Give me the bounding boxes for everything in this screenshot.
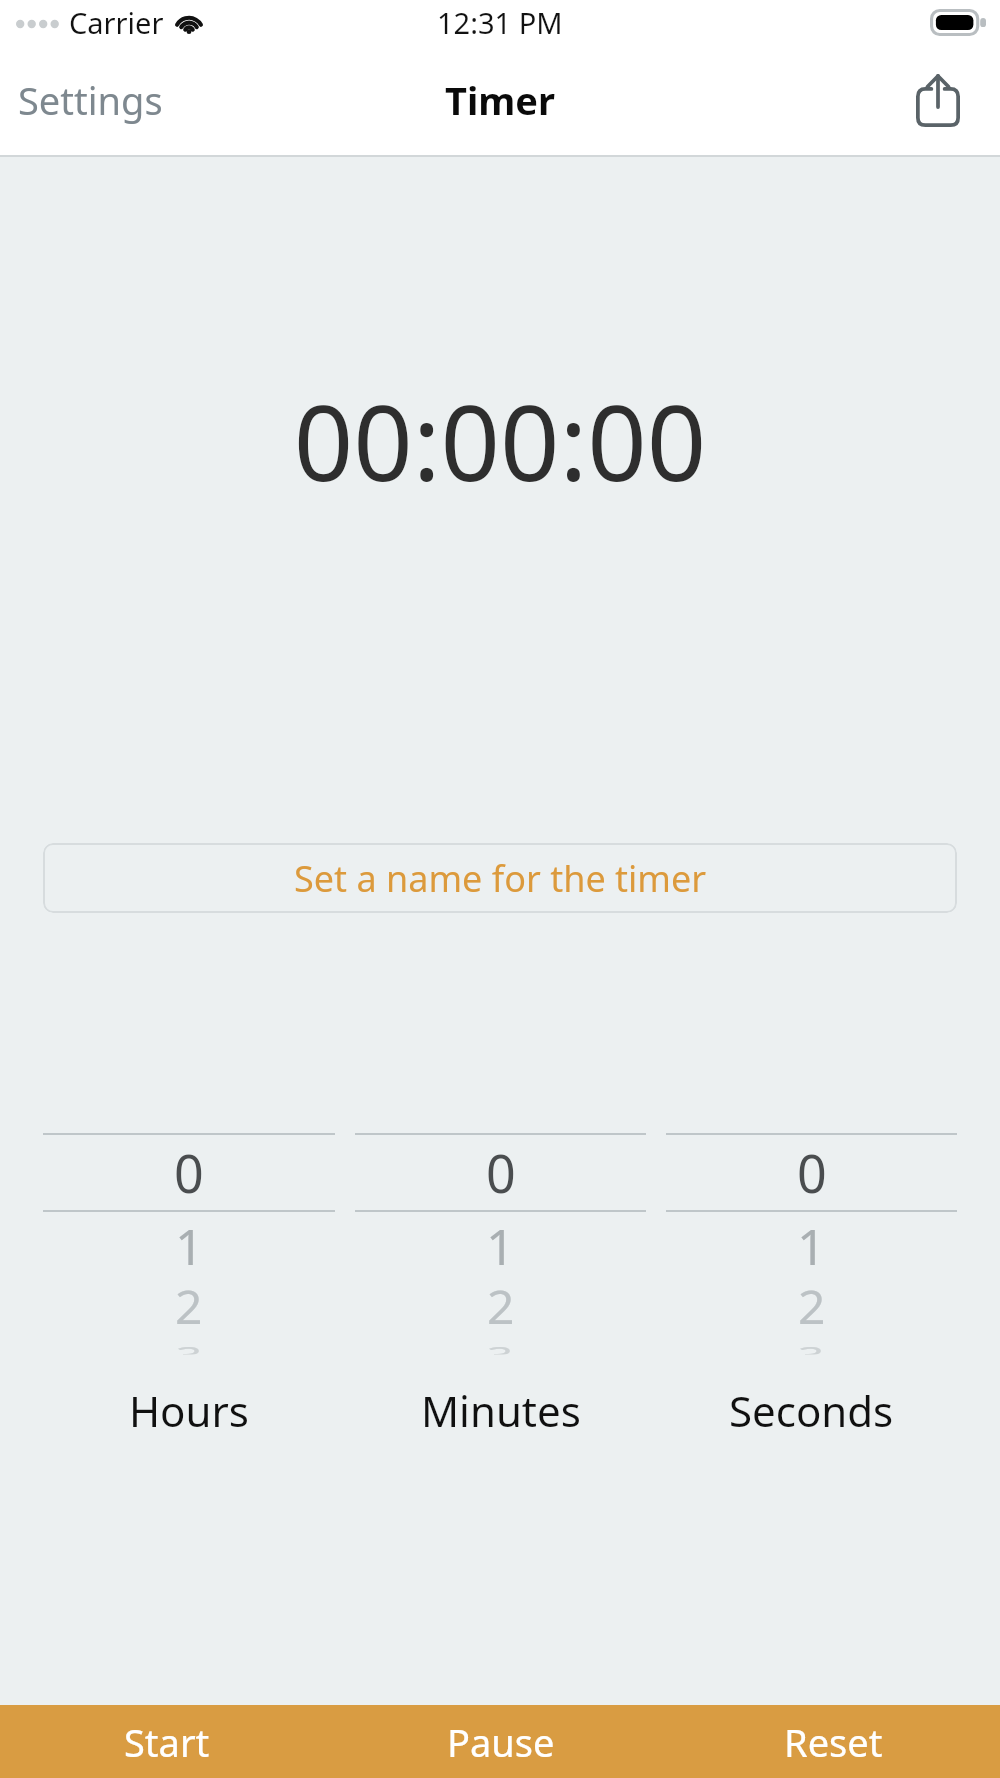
staticText: 3 (176, 1339, 203, 1354)
button[interactable]: 0 (666, 1133, 957, 1439)
staticText: 1 (486, 1212, 515, 1274)
staticText: Start (124, 1716, 210, 1768)
staticText: Carrier (69, 3, 164, 42)
staticText: 0 (486, 1137, 516, 1208)
staticText: Reset (784, 1716, 883, 1768)
button[interactable]: Reset (667, 1705, 1000, 1778)
button[interactable]: Settings (0, 60, 181, 140)
staticText: 00:00:00 (0, 370, 1000, 512)
staticText: 3 (487, 1339, 514, 1354)
staticText: Seconds (729, 1382, 894, 1439)
staticText: 1 (175, 1212, 204, 1274)
staticText: 2 (798, 1276, 826, 1330)
staticText: Timer (445, 74, 556, 126)
button[interactable]: 0 (355, 1133, 646, 1439)
button[interactable]: Share (910, 72, 966, 128)
staticText: 0 (797, 1137, 827, 1208)
button[interactable]: Pause (334, 1705, 667, 1778)
button[interactable]: 0 (43, 1133, 335, 1439)
staticText: Settings (18, 74, 163, 126)
staticText: 1 (797, 1212, 826, 1274)
staticText: 3 (798, 1339, 825, 1354)
staticText: Minutes (421, 1382, 581, 1439)
staticText: Hours (129, 1382, 249, 1439)
staticText: Set a name for the timer (294, 854, 707, 903)
staticText: Pause (447, 1716, 555, 1768)
staticText: 2 (175, 1276, 203, 1330)
button[interactable]: Set a name for the timer (43, 843, 957, 913)
staticText: 0 (174, 1137, 204, 1208)
staticText: 12:31 PM (437, 3, 563, 42)
button[interactable]: Start (0, 1705, 334, 1778)
staticText: 2 (487, 1276, 515, 1330)
